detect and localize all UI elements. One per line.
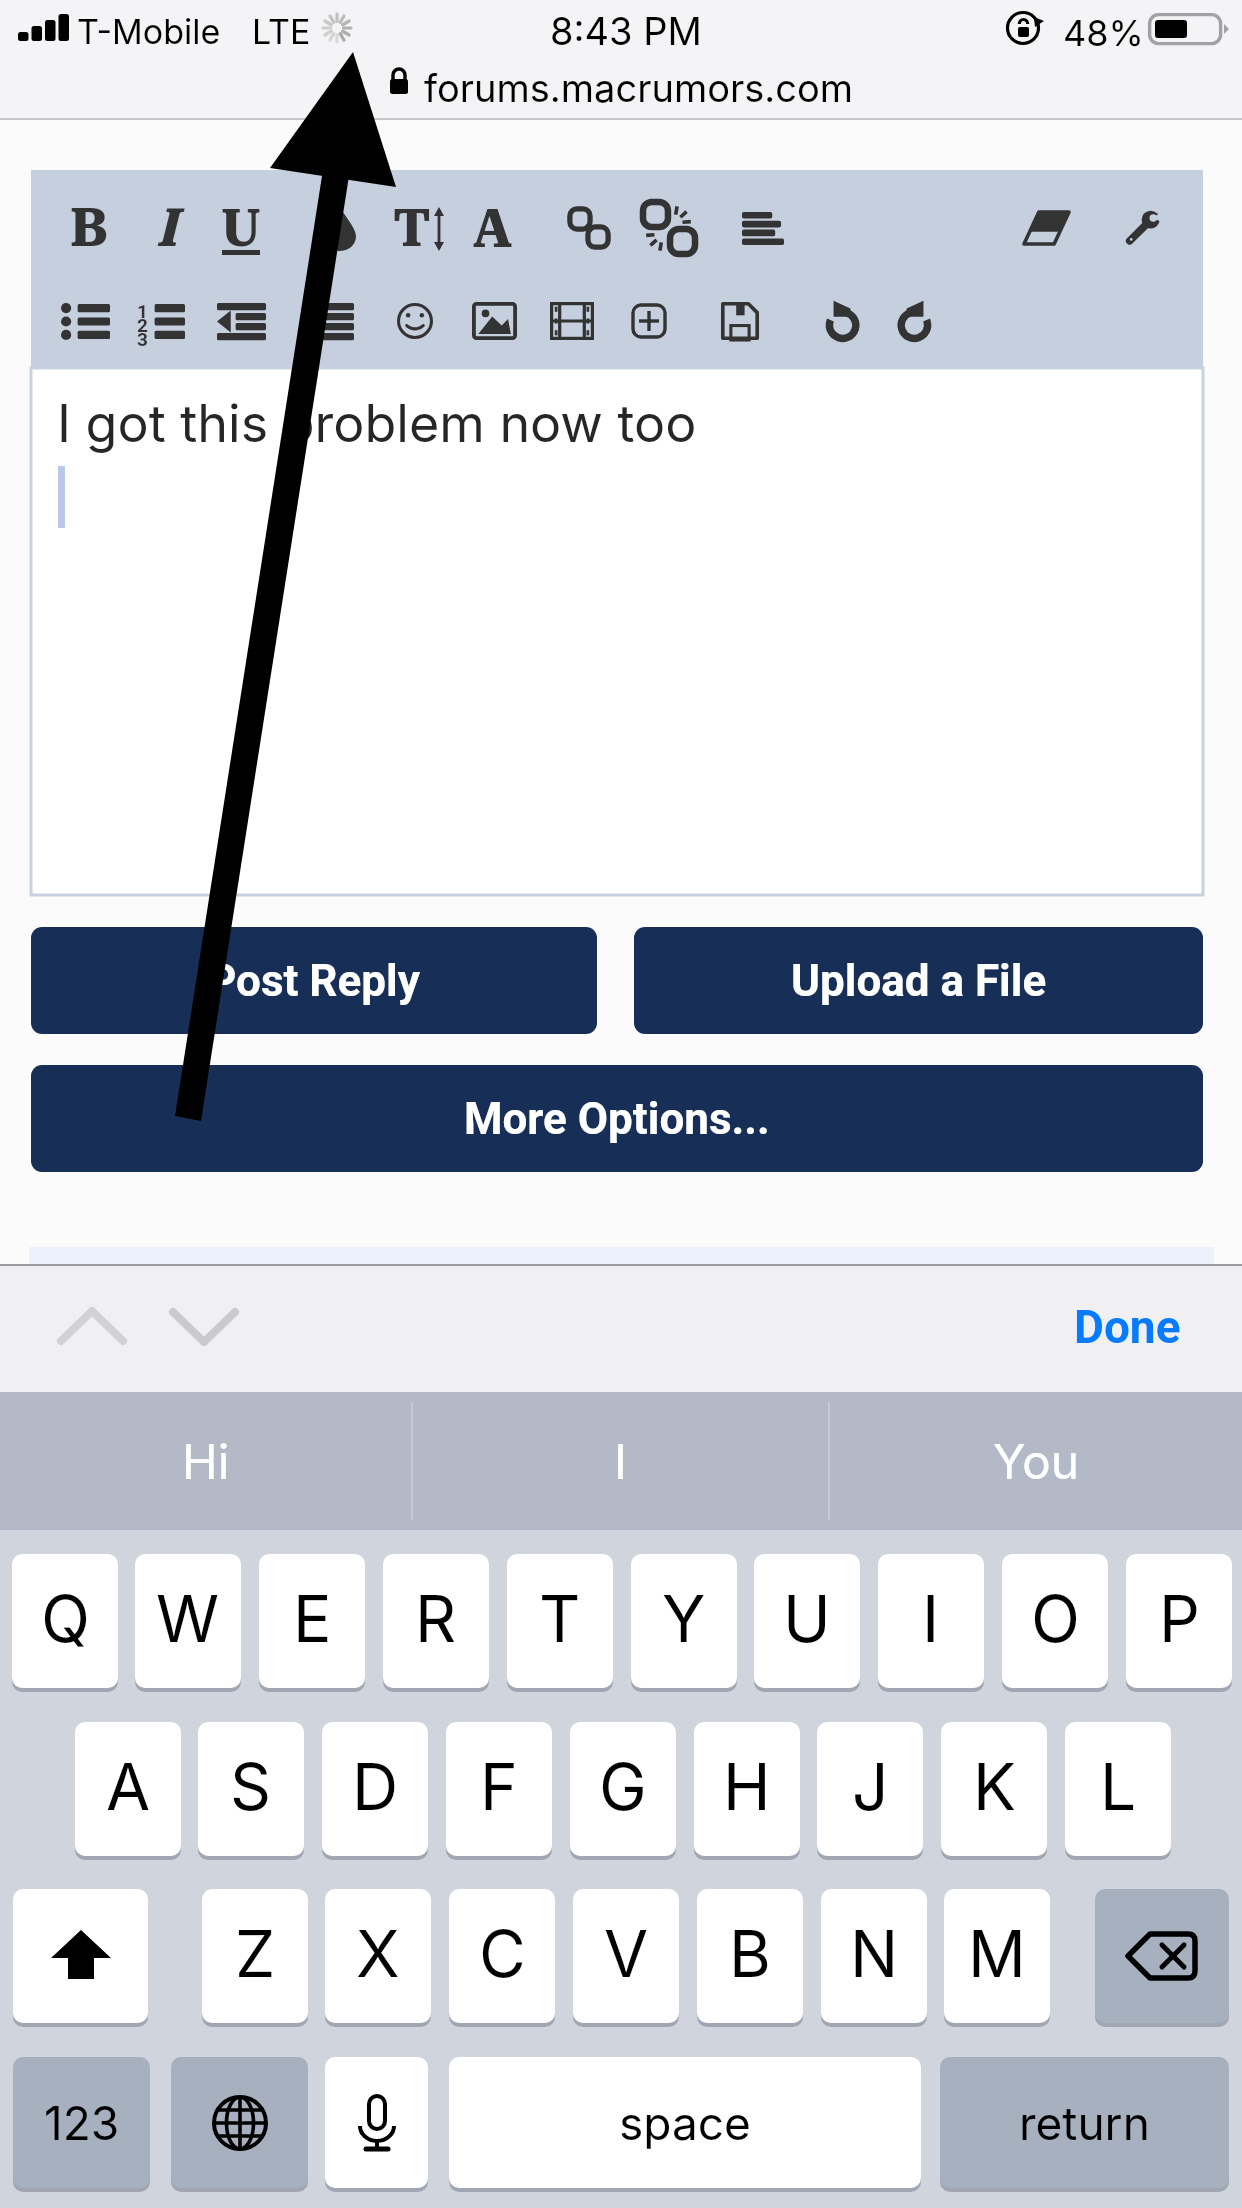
button[interactable]: return [940,2057,1229,2188]
staticText: T [539,1580,581,1657]
staticText: D [352,1748,399,1825]
staticText: H [723,1748,771,1825]
staticText: Q [41,1580,90,1657]
button[interactable]: Next field [157,1294,251,1362]
button[interactable]: Hi [0,1392,411,1530]
button[interactable]: B [697,1889,803,2023]
staticText: C [479,1915,526,1992]
staticText: N [850,1915,899,1992]
button[interactable]: Align [717,188,809,268]
button[interactable]: Y [631,1554,737,1688]
button[interactable]: Insert link [545,186,633,270]
staticText: I got this problem now too [57,392,697,455]
button[interactable]: G [570,1722,676,1856]
button[interactable]: A [75,1722,181,1856]
button[interactable]: P [1126,1554,1232,1688]
button[interactable]: space [449,2057,921,2188]
button[interactable]: Emoji [376,283,454,359]
button[interactable]: U [754,1554,860,1688]
button[interactable]: W [135,1554,241,1688]
button[interactable]: Bullet list [46,283,124,359]
button[interactable]: Insert image [455,283,533,359]
button[interactable]: Remove link [622,184,716,272]
staticText: X [356,1915,400,1992]
button[interactable]: H [694,1722,800,1856]
button[interactable]: K [941,1722,1047,1856]
button[interactable]: I [878,1554,984,1688]
button[interactable]: Shift [13,1889,148,2023]
staticText: 8:43 PM [550,8,702,54]
button[interactable]: Undo [798,283,880,359]
button[interactable]: Clear formatting [1003,188,1089,268]
staticText: I [614,1432,627,1490]
button[interactable]: Outdent [202,283,280,359]
button[interactable]: E [259,1554,365,1688]
button[interactable]: Post Reply [31,927,597,1034]
staticText: O [1031,1580,1080,1657]
button[interactable]: D [322,1722,428,1856]
staticText: M [968,1915,1026,1992]
button[interactable]: Redo [877,283,959,359]
button[interactable]: F [446,1722,552,1856]
button[interactable]: Insert [610,283,688,359]
button[interactable]: N [821,1889,927,2023]
button[interactable]: Font size [376,188,464,268]
staticText: Z [235,1915,276,1992]
staticText: I [922,1580,940,1657]
staticText: V [604,1915,649,1992]
button[interactable]: Italic [127,188,205,268]
staticText: A [473,197,513,260]
staticText: R [415,1580,457,1657]
button[interactable]: T [507,1554,613,1688]
button[interactable]: Numbered list [121,283,199,359]
button[interactable]: X [325,1889,431,2023]
staticText: More Options... [464,1093,770,1145]
button[interactable]: M [944,1889,1050,2023]
button[interactable]: I [413,1392,828,1530]
button[interactable]: L [1065,1722,1171,1856]
button[interactable]: Insert video [533,283,611,359]
staticText: W [156,1580,220,1657]
staticText: U [783,1580,831,1657]
button[interactable]: Switch keyboard [171,2057,308,2188]
button[interactable]: J [817,1722,923,1856]
button[interactable]: Font family [454,188,532,268]
staticText: 1 [137,300,148,322]
button[interactable]: Done [1042,1284,1212,1370]
staticText: E [293,1580,332,1657]
button[interactable]: Save draft [701,283,779,359]
staticText: Post Reply [208,955,420,1007]
button[interactable]: Text colour [300,188,378,268]
button[interactable]: More tools [1100,188,1186,268]
button[interactable]: Indent [290,283,368,359]
staticText: Y [662,1580,706,1657]
button[interactable]: Numbers [13,2057,150,2188]
button[interactable]: O [1002,1554,1108,1688]
staticText: return [1019,2095,1150,2151]
staticText: T-Mobile [77,11,221,52]
staticText: Upload a File [791,955,1047,1007]
button[interactable]: You [830,1392,1242,1530]
staticText: J [852,1748,889,1825]
button[interactable]: Underline [202,188,280,268]
button[interactable]: R [383,1554,489,1688]
staticText: S [230,1748,272,1825]
button[interactable]: Upload a File [634,927,1203,1034]
button[interactable]: Z [202,1889,308,2023]
staticText: You [993,1432,1080,1490]
button[interactable]: C [449,1889,555,2023]
staticText: forums.macrumors.com [424,65,854,111]
button[interactable]: More Options... [31,1065,1203,1172]
staticText: space [619,2095,751,2151]
button[interactable]: V [573,1889,679,2023]
button[interactable]: Dictation [325,2057,428,2188]
button[interactable]: S [198,1722,304,1856]
staticText: K [973,1748,1016,1825]
button[interactable]: Backspace [1095,1889,1229,2023]
staticText: G [599,1748,647,1825]
staticText: B [729,1915,771,1992]
button[interactable]: Bold [50,188,128,268]
button[interactable]: Q [12,1554,118,1688]
staticText: Hi [182,1432,230,1490]
button[interactable]: Previous field [45,1294,139,1362]
